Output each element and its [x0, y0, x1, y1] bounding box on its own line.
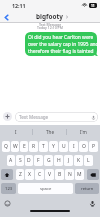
button[interactable]: S: [16, 155, 24, 166]
button[interactable]: return: [75, 183, 99, 194]
button[interactable]: R: [29, 141, 38, 152]
staticText: A: [9, 157, 13, 164]
staticText: Text Message: [19, 114, 49, 120]
staticText: 12:11: [12, 2, 26, 9]
staticText: return: [81, 186, 94, 192]
staticText: Z: [19, 171, 22, 178]
staticText: bigfooty: [36, 12, 63, 21]
button[interactable]: Dictation: [89, 200, 96, 207]
button[interactable]: H: [54, 155, 63, 166]
button[interactable]: space: [18, 183, 73, 194]
button[interactable]: U: [59, 141, 68, 152]
staticText: Q: [4, 143, 8, 150]
button[interactable]: Oi did you hear Carlton were: [25, 32, 97, 56]
staticText: I'm: [80, 129, 87, 135]
button[interactable]: W: [11, 141, 19, 152]
button[interactable]: N: [65, 169, 74, 180]
button[interactable]: Shift: [1, 169, 13, 180]
button[interactable]: I: [0, 125, 32, 138]
staticText: S: [19, 157, 22, 164]
button[interactable]: L: [84, 155, 93, 166]
button[interactable]: M: [75, 169, 84, 180]
staticText: L: [87, 157, 90, 164]
staticText: The: [46, 129, 54, 135]
button[interactable]: The: [33, 125, 66, 138]
button[interactable]: V: [45, 169, 54, 180]
staticText: H: [57, 157, 61, 164]
button[interactable]: O: [79, 141, 88, 152]
button[interactable]: Q: [2, 141, 10, 152]
button[interactable]: T: [39, 141, 48, 152]
staticText: 11: [91, 4, 95, 8]
button[interactable]: C: [35, 169, 44, 180]
staticText: I: [15, 129, 17, 135]
button[interactable]: D: [25, 155, 33, 166]
button[interactable]: I: [69, 141, 78, 152]
button[interactable]: Add attachment: [3, 112, 12, 121]
button[interactable]: Back: [1, 12, 11, 22]
staticText: K: [77, 157, 81, 164]
staticText: N: [68, 171, 72, 178]
staticText: space: [40, 186, 52, 192]
staticText: over the salary cap in 1995 and: [28, 41, 97, 48]
staticText: F: [37, 157, 40, 164]
button[interactable]: J: [64, 155, 73, 166]
button[interactable]: P: [89, 141, 98, 152]
button[interactable]: 123: [1, 183, 16, 194]
button[interactable]: B: [55, 169, 64, 180]
staticText: P: [92, 143, 96, 150]
staticText: B: [58, 171, 62, 178]
staticText: X: [28, 171, 31, 178]
staticText: C: [38, 171, 42, 178]
button[interactable]: Text Message: [15, 112, 98, 122]
staticText: V: [48, 171, 52, 178]
staticText: 123: [5, 186, 13, 192]
button[interactable]: X: [25, 169, 34, 180]
button[interactable]: K: [74, 155, 83, 166]
button[interactable]: Y: [49, 141, 58, 152]
staticText: R: [32, 143, 36, 150]
staticText: G: [47, 157, 51, 164]
staticText: O: [82, 143, 86, 150]
staticText: U: [62, 143, 66, 150]
staticText: Text Message Today 12:10 PM: [37, 22, 63, 30]
staticText: T: [42, 143, 45, 150]
staticText: I: [73, 143, 75, 150]
button[interactable]: bigfooty: [36, 12, 69, 21]
button[interactable]: Emoji keyboard: [4, 200, 11, 207]
button[interactable]: Z: [16, 169, 24, 180]
button[interactable]: Delete: [87, 169, 99, 180]
staticText: therefore their flag is tainted: [28, 48, 94, 55]
button[interactable]: Record audio message: [90, 114, 96, 120]
staticText: J: [68, 157, 70, 164]
button[interactable]: I'm: [67, 125, 100, 138]
staticText: E: [23, 143, 26, 150]
staticText: M: [77, 171, 82, 178]
staticText: D: [27, 157, 31, 164]
button[interactable]: E: [20, 141, 28, 152]
staticText: W: [13, 143, 18, 150]
button[interactable]: A: [7, 155, 15, 166]
staticText: Y: [52, 143, 55, 150]
button[interactable]: F: [34, 155, 43, 166]
button[interactable]: G: [44, 155, 53, 166]
staticText: Oi did you hear Carlton were: [28, 34, 94, 41]
